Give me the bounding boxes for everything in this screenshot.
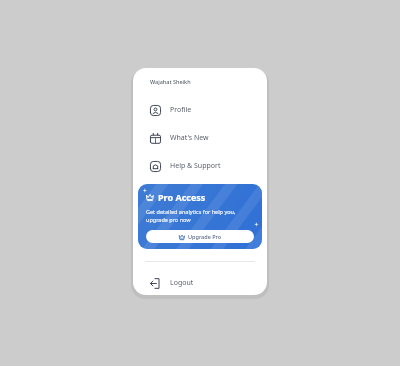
staticText: Pro Access xyxy=(158,191,206,203)
button[interactable]: What's New xyxy=(133,124,267,152)
button[interactable]: Profile xyxy=(133,96,267,124)
button[interactable]: Help & Support xyxy=(133,152,267,180)
staticText: Wajahat Sheikh xyxy=(150,78,191,85)
staticText: Get detailed analytics for help you, upg… xyxy=(146,208,236,224)
staticText: Upgrade Pro xyxy=(188,233,222,240)
button[interactable]: Pro Access xyxy=(138,184,262,249)
staticText: Logout xyxy=(170,278,194,288)
staticText: Help & Support xyxy=(170,161,221,171)
button[interactable]: Upgrade Pro xyxy=(146,230,254,243)
staticText: What's New xyxy=(170,133,209,143)
staticText: Profile xyxy=(170,105,192,115)
button[interactable]: Logout xyxy=(133,271,267,295)
